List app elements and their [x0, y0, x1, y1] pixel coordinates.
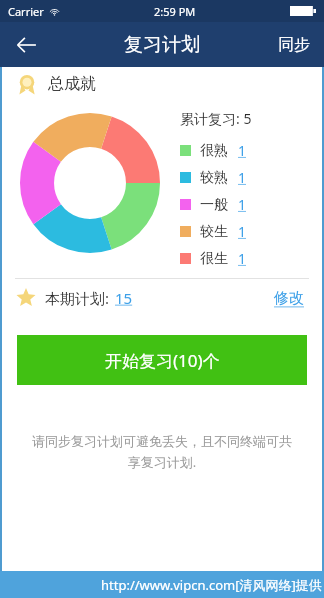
button[interactable]: 返回 — [0, 22, 52, 67]
staticText: 1 — [238, 168, 247, 187]
staticText: 1 — [238, 222, 247, 241]
staticText: 一般 — [200, 196, 228, 214]
button[interactable]: 较生 — [180, 218, 324, 245]
staticText: http://www.vipcn.com[清风网络]提供 — [101, 576, 322, 594]
staticText: 同步 — [278, 35, 310, 55]
staticText: 总成就 — [48, 74, 96, 94]
staticText: 很生 — [200, 250, 228, 268]
staticText: 1 — [238, 141, 247, 160]
staticText: 复习计划 — [124, 33, 200, 57]
button[interactable]: 开始复习(10)个 — [17, 335, 307, 385]
button[interactable]: 一般 — [180, 191, 324, 218]
button[interactable]: 15 — [115, 288, 133, 308]
staticText: 较生 — [200, 223, 228, 241]
staticText: 请同步复习计划可避免丢失，且不同终端可共享复习计划. — [26, 433, 298, 471]
staticText: 较熟 — [200, 169, 228, 187]
staticText: 1 — [238, 195, 247, 214]
staticText: 很熟 — [200, 142, 228, 160]
button[interactable]: 同步 — [264, 22, 324, 67]
button[interactable]: 修改 — [270, 285, 308, 312]
staticText: 累计复习: 5 — [180, 109, 252, 128]
staticText: 2:59 PM — [154, 4, 196, 19]
staticText: 15 — [115, 288, 133, 308]
staticText: 修改 — [274, 289, 304, 308]
staticText: 本期计划: — [45, 288, 110, 308]
button[interactable]: 较熟 — [180, 164, 324, 191]
button[interactable]: 很熟 — [180, 137, 324, 164]
staticText: Carrier — [8, 4, 44, 19]
button[interactable]: 很生 — [180, 245, 324, 272]
staticText: 1 — [238, 249, 247, 268]
staticText: 开始复习(10)个 — [105, 349, 220, 372]
